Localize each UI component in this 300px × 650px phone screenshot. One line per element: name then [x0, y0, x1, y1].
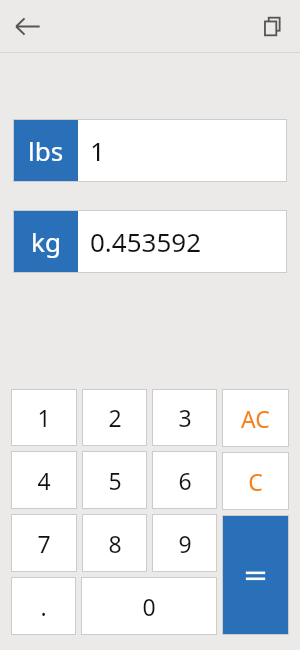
staticText: 0 [142, 591, 156, 622]
button[interactable]: 1 [11, 389, 77, 446]
button[interactable]: Copy [250, 4, 294, 48]
staticText: 8 [108, 528, 122, 559]
button[interactable]: Equals [222, 515, 289, 635]
staticText: kg [31, 224, 61, 259]
staticText: 3 [178, 402, 192, 433]
staticText: lbs [28, 133, 64, 168]
button[interactable]: kg [13, 210, 287, 273]
staticText: 5 [108, 465, 122, 496]
button[interactable]: C [222, 452, 289, 510]
button[interactable]: 5 [82, 451, 147, 509]
staticText: 4 [37, 465, 51, 496]
button[interactable]: 2 [82, 389, 147, 446]
staticText: 9 [178, 528, 192, 559]
staticText: 1 [90, 133, 105, 168]
button[interactable]: 0 [81, 577, 217, 635]
staticText: AC [241, 403, 270, 434]
staticText: 0.453592 [90, 224, 202, 259]
button[interactable]: AC [222, 389, 289, 447]
button[interactable]: 4 [11, 451, 77, 509]
button[interactable]: 9 [152, 514, 217, 572]
button[interactable]: 7 [11, 514, 77, 572]
staticText: 7 [37, 528, 51, 559]
button[interactable]: 6 [152, 451, 217, 509]
button[interactable]: 3 [152, 389, 217, 446]
button[interactable]: lbs [13, 119, 287, 182]
staticText: 1 [37, 402, 51, 433]
staticText: 6 [178, 465, 192, 496]
button[interactable]: 8 [82, 514, 147, 572]
button[interactable]: . [11, 577, 76, 635]
staticText: . [40, 591, 47, 622]
staticText: 2 [108, 402, 122, 433]
staticText: C [248, 466, 263, 497]
button[interactable]: Back [4, 3, 50, 49]
